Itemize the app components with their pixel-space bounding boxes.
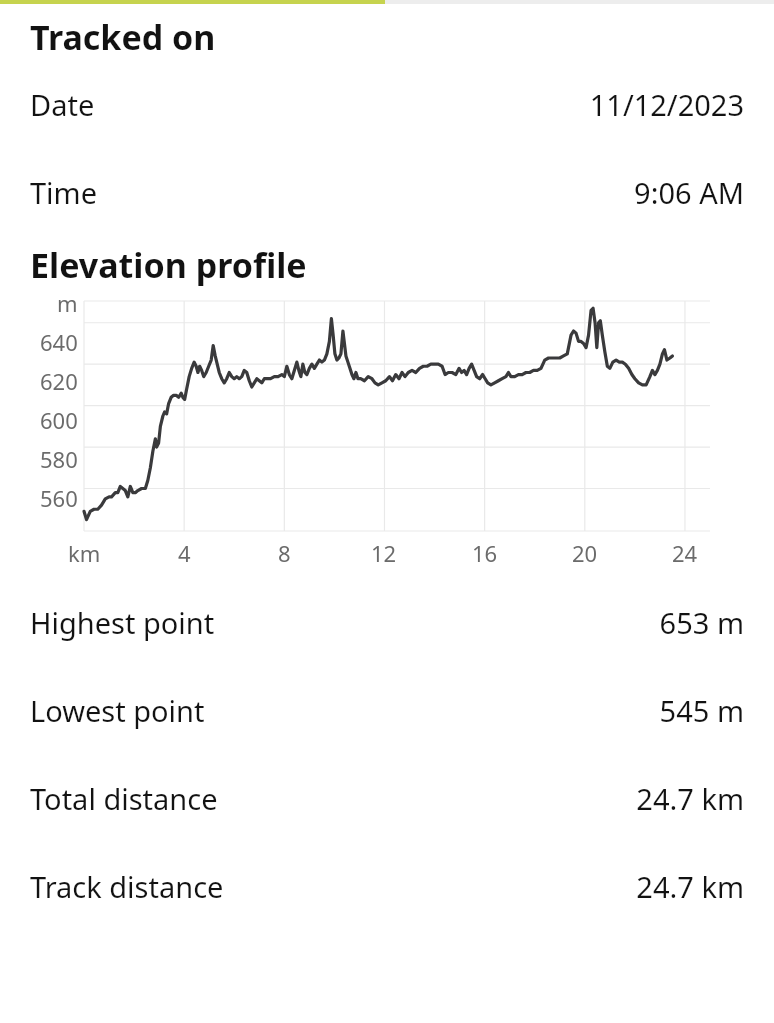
button[interactable]: Total distance — [0, 754, 774, 842]
staticText: Elevation profile — [30, 242, 307, 288]
staticText: 24.7 km — [636, 867, 744, 906]
staticText: 8 — [278, 538, 291, 568]
staticText: Time — [30, 173, 98, 212]
button[interactable]: Time — [0, 148, 774, 236]
staticText: 620 — [40, 366, 78, 396]
staticText: m — [57, 288, 78, 318]
staticText: Highest point — [30, 603, 215, 642]
staticText: 24 — [672, 538, 698, 568]
staticText: 20 — [572, 538, 598, 568]
staticText: 653 m — [659, 603, 744, 642]
staticText: 600 — [40, 405, 78, 435]
staticText: Tracked on — [30, 14, 216, 60]
staticText: km — [68, 538, 101, 568]
staticText: 16 — [472, 538, 498, 568]
button[interactable]: Lowest point — [0, 666, 774, 754]
staticText: 12 — [371, 538, 397, 568]
staticText: 24.7 km — [636, 779, 744, 818]
staticText: Lowest point — [30, 691, 205, 730]
staticText: 9:06 AM — [634, 173, 744, 212]
staticText: 11/12/2023 — [589, 85, 744, 124]
button[interactable]: Date — [0, 60, 774, 148]
staticText: 4 — [178, 538, 191, 568]
staticText: 560 — [40, 483, 78, 513]
staticText: 580 — [40, 444, 78, 474]
button[interactable]: Highest point — [0, 578, 774, 666]
button[interactable]: Track distance — [0, 842, 774, 930]
staticText: Date — [30, 85, 95, 124]
staticText: Track distance — [30, 867, 224, 906]
staticText: 640 — [40, 327, 78, 357]
other: Elevation profile chart — [0, 288, 774, 578]
staticText: Total distance — [30, 779, 218, 818]
staticText: 545 m — [659, 691, 744, 730]
